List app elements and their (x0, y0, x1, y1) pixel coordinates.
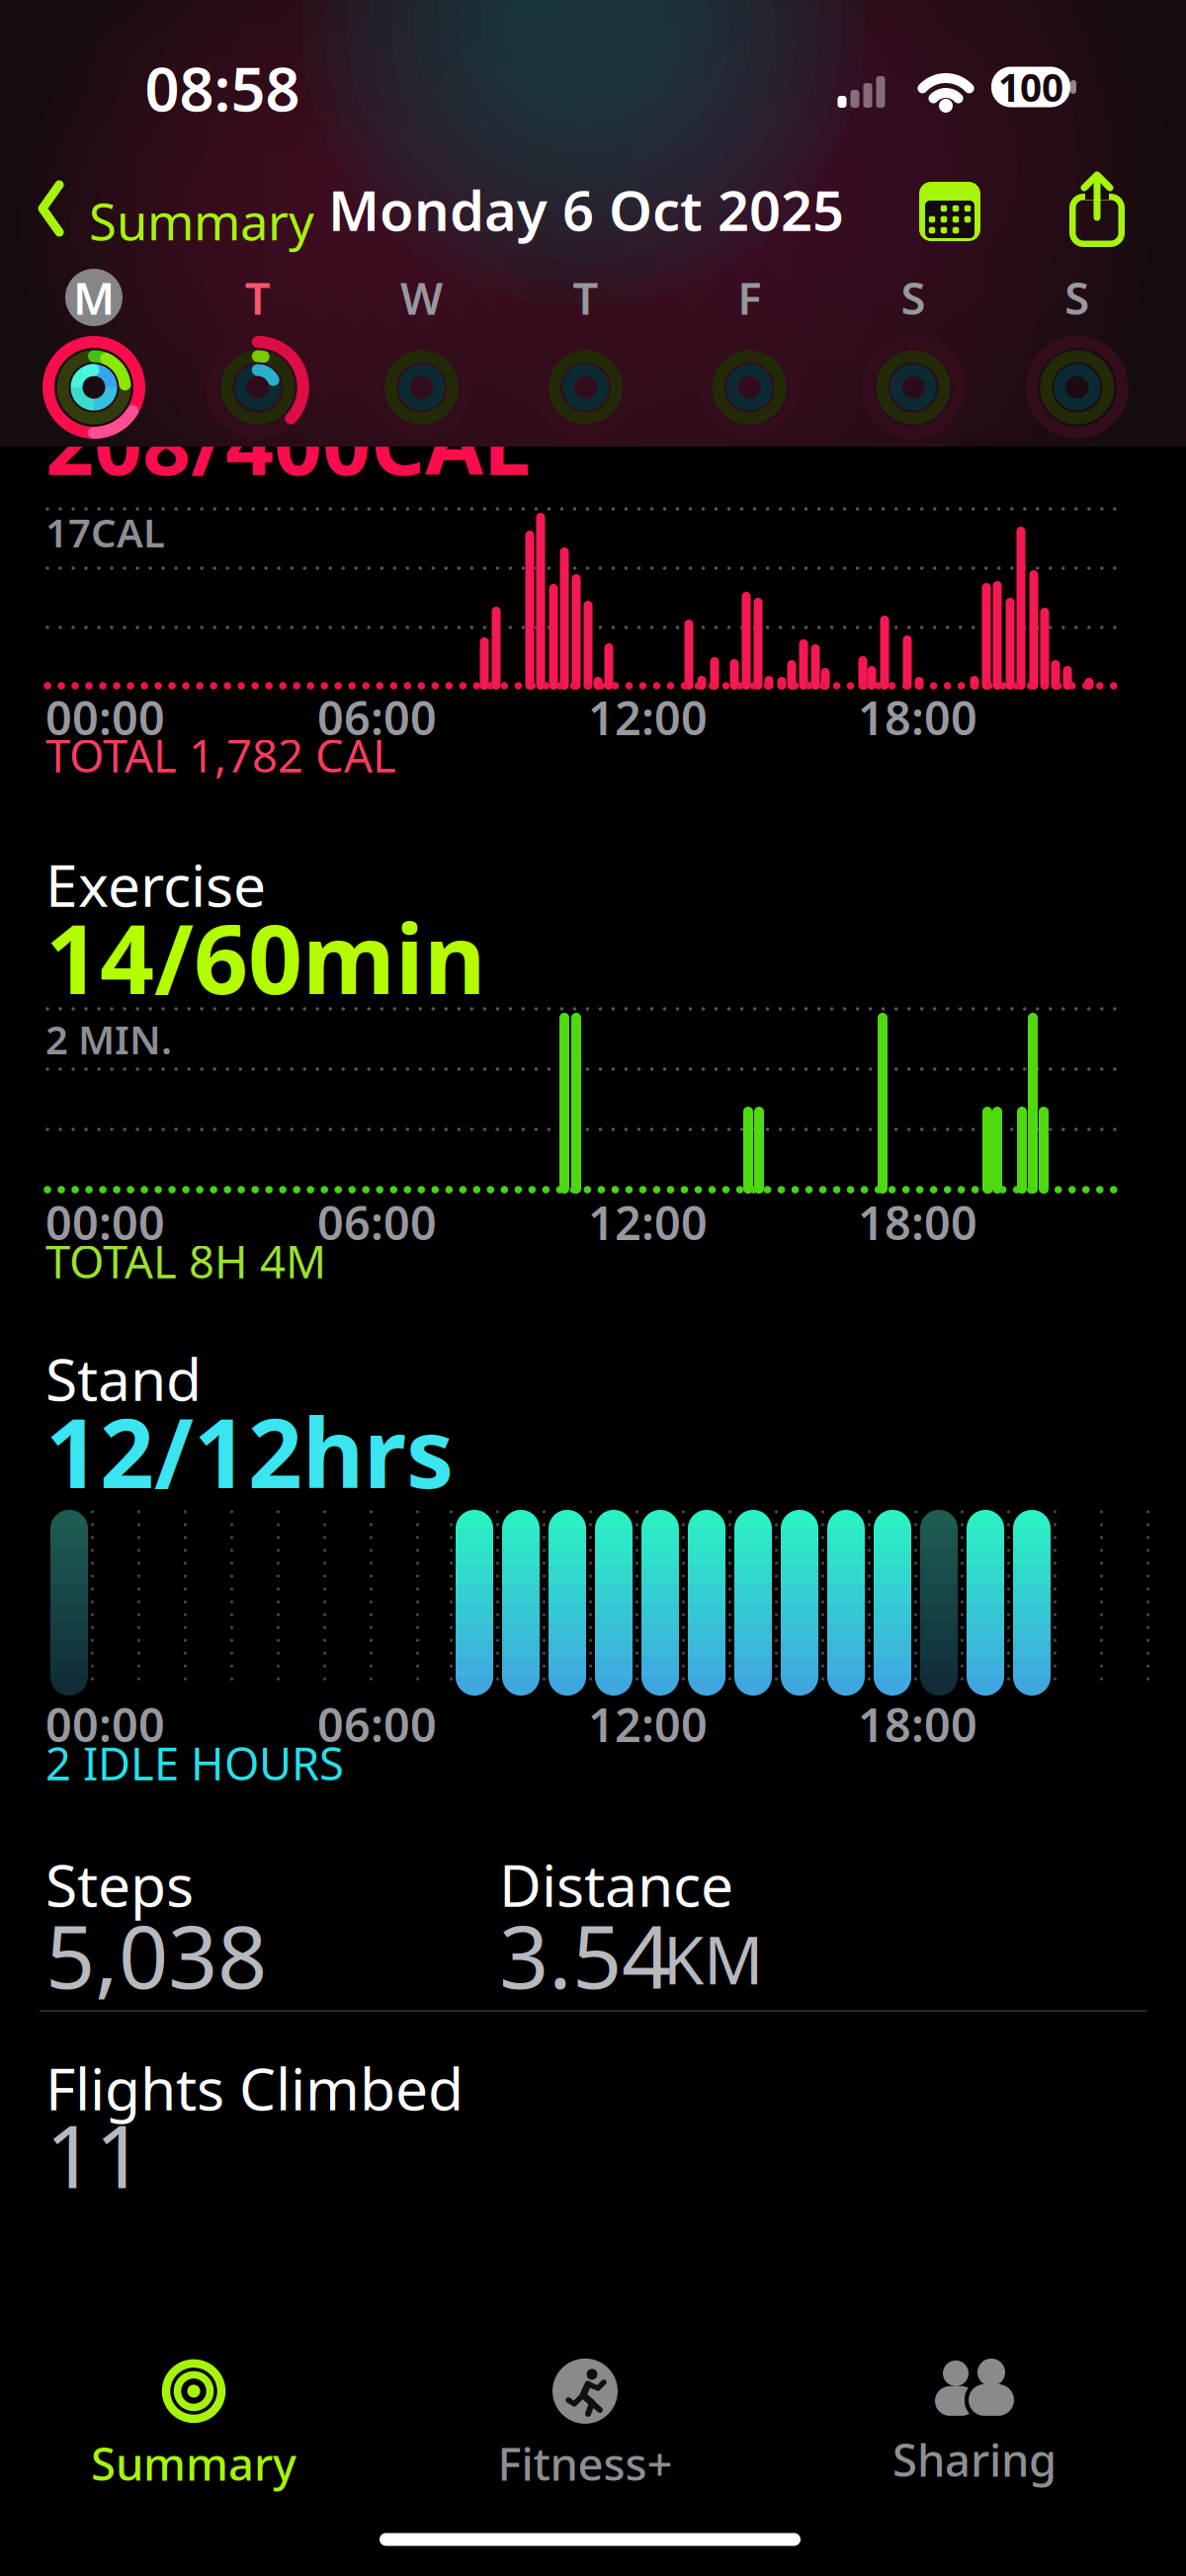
staticText: Stand (45, 1340, 202, 1417)
staticText: 18:00 (858, 687, 977, 748)
staticText: 18:00 (858, 1694, 977, 1755)
staticText: 12:00 (588, 1694, 708, 1755)
button[interactable]: Day activity (1026, 336, 1128, 439)
staticText: T (245, 268, 271, 327)
button[interactable]: Day activity (698, 336, 801, 439)
staticText: 12:00 (588, 1192, 708, 1253)
button[interactable]: Summary (91, 2359, 296, 2493)
staticText: 00:00 (45, 1192, 165, 1253)
staticText: 08:58 (145, 48, 300, 128)
staticText: Fitness+ (498, 2434, 673, 2493)
staticText: 2 MIN. (45, 1013, 172, 1065)
button[interactable]: Day activity (862, 336, 965, 439)
staticText: 14/60min (45, 894, 485, 1020)
staticText: 3.54 (499, 1897, 671, 2013)
staticText: 100 (998, 62, 1063, 112)
staticText: F (737, 268, 761, 327)
staticText: Monday 6 Oct 2025 (328, 173, 844, 246)
button[interactable]: Share (1069, 172, 1125, 247)
button[interactable]: Summary (0, 0, 1186, 447)
button[interactable]: Choose date (919, 182, 980, 241)
button[interactable]: Day activity (370, 336, 473, 439)
staticText: T (573, 268, 598, 327)
staticText: 00:00 (45, 1694, 165, 1755)
staticText: 12:00 (588, 687, 708, 748)
button[interactable]: Monday activity (42, 336, 145, 439)
staticText: Exercise (45, 846, 266, 923)
staticText: Summary (91, 2434, 296, 2493)
staticText: Summary (89, 188, 314, 254)
staticText: 06:00 (317, 687, 437, 748)
staticText: 12/12hrs (45, 1388, 454, 1514)
staticText: 208/400CAL (45, 386, 531, 498)
staticText: S (901, 268, 926, 327)
staticText: Steps (45, 1846, 194, 1923)
staticText: 2 IDLE HOURS (45, 1733, 344, 1793)
staticText: Flights Climbed (45, 2049, 464, 2126)
staticText: 11 (45, 2097, 144, 2212)
staticText: M (73, 268, 115, 327)
button[interactable]: Fitness+ (498, 2359, 673, 2493)
button[interactable]: Day activity (534, 336, 637, 439)
staticText: TOTAL 1,782 CAL (45, 725, 396, 785)
staticText: W (400, 268, 443, 327)
staticText: 06:00 (317, 1694, 437, 1755)
button[interactable]: Sharing (892, 2359, 1057, 2489)
button[interactable]: Tuesday activity (206, 336, 309, 439)
staticText: KM (663, 1915, 763, 2002)
staticText: 17CAL (45, 506, 165, 558)
staticText: TOTAL 8H 4M (45, 1231, 326, 1291)
staticText: 06:00 (317, 1192, 437, 1253)
staticText: Distance (499, 1846, 733, 1923)
staticText: 5,038 (45, 1897, 267, 2013)
staticText: S (1065, 268, 1089, 327)
staticText: 18:00 (858, 1192, 977, 1253)
staticText: 00:00 (45, 687, 165, 748)
staticText: Sharing (892, 2430, 1057, 2489)
